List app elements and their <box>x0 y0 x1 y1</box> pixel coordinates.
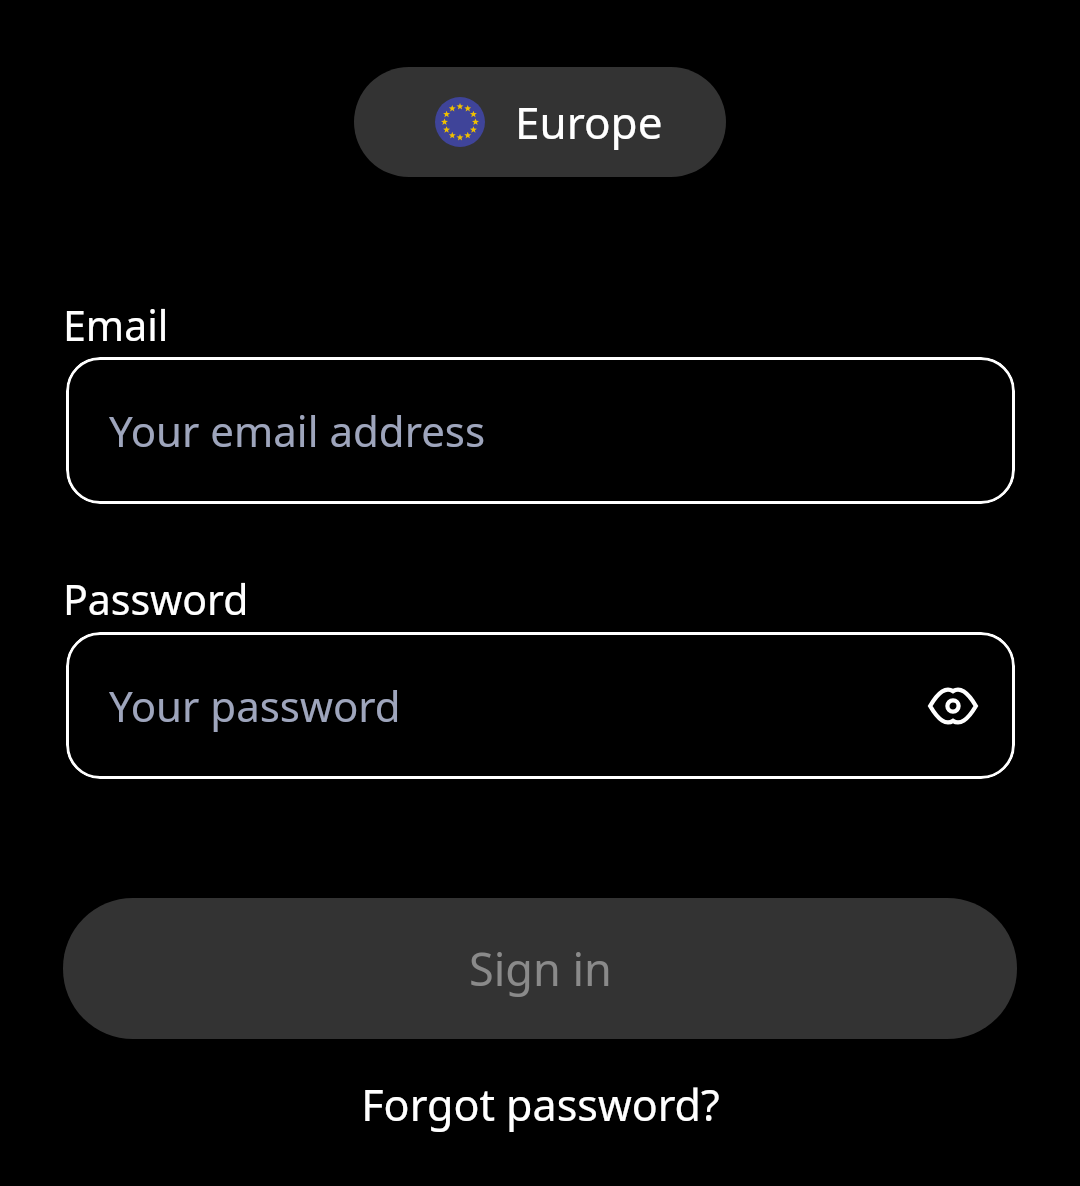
button[interactable]: Your password <box>66 632 1015 779</box>
button[interactable]: Your email address <box>66 357 1015 504</box>
staticText: Your email address <box>109 402 486 459</box>
button[interactable]: Show password <box>911 664 995 748</box>
staticText: Forgot password? <box>361 1075 720 1134</box>
staticText: Email <box>63 297 169 353</box>
staticText: Password <box>63 571 249 627</box>
button[interactable]: Sign in <box>63 898 1017 1039</box>
button[interactable]: Forgot password? <box>0 1073 1080 1135</box>
staticText: Your password <box>109 677 401 734</box>
staticText: Sign in <box>469 938 612 999</box>
button[interactable]: Europe <box>354 67 726 177</box>
staticText: Europe <box>515 92 663 152</box>
